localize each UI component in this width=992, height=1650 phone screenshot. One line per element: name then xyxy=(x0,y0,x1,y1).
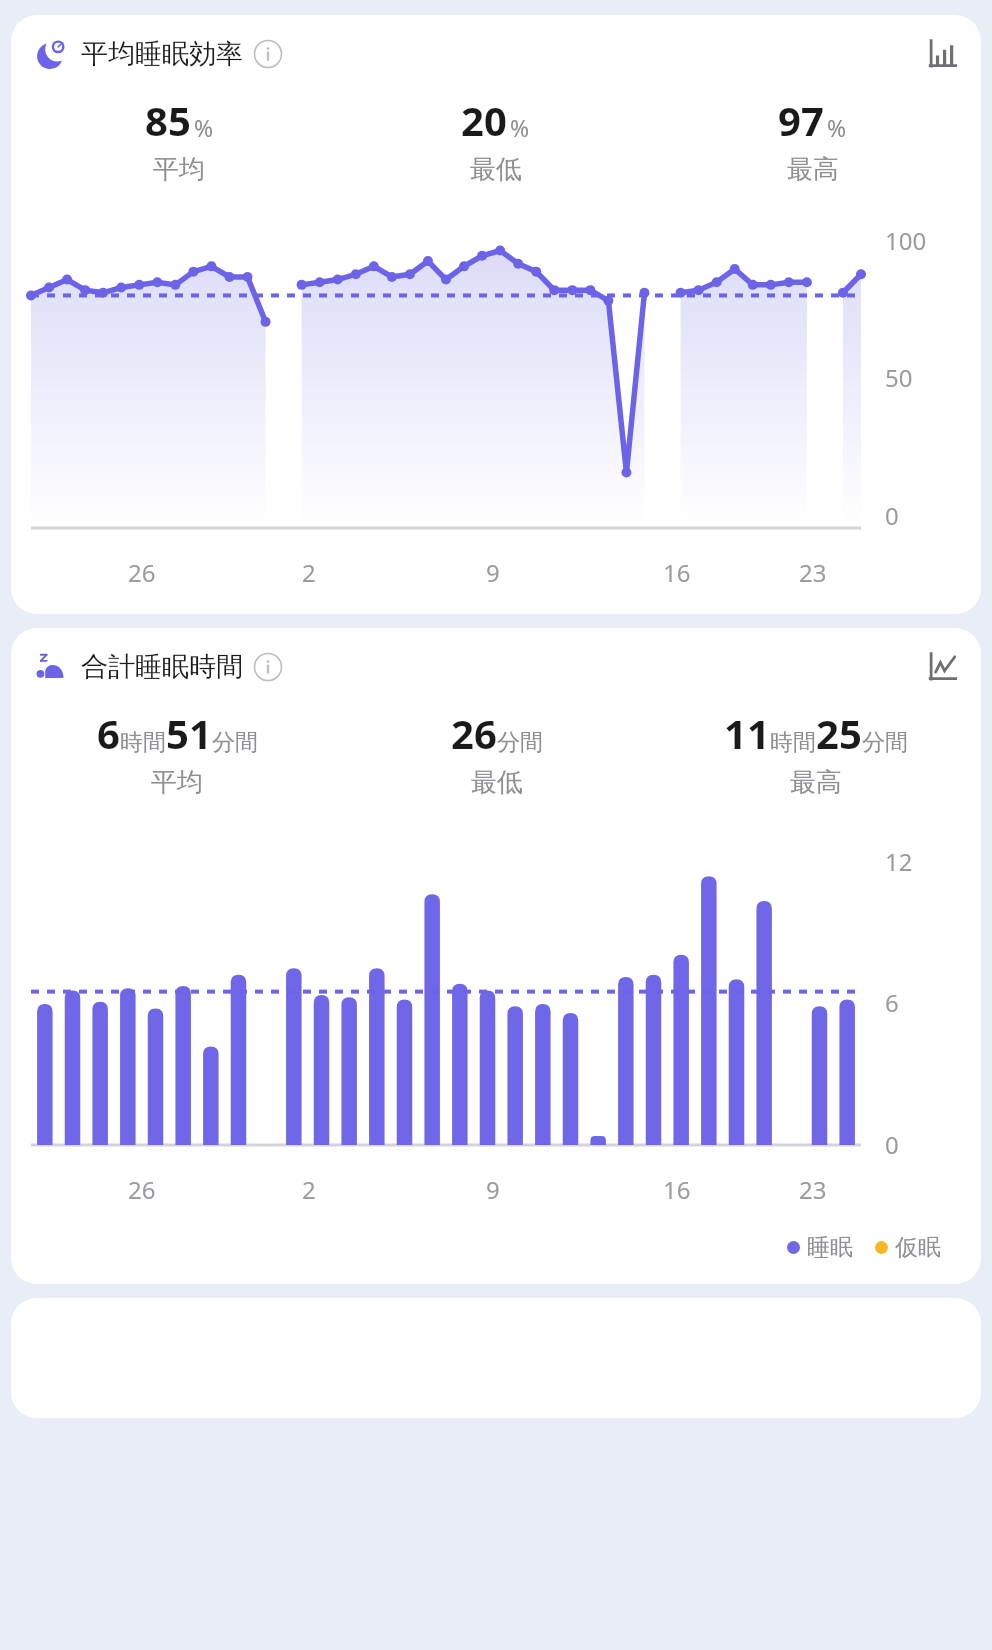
staticText: 時間 xyxy=(770,728,816,757)
staticText: 平均 xyxy=(153,153,205,186)
staticText: 分間 xyxy=(862,728,908,757)
button[interactable]: 睡眠 xyxy=(787,1233,853,1262)
button[interactable]: 情報 xyxy=(253,652,283,682)
button[interactable]: 折れ線グラフ表示 xyxy=(925,650,959,684)
staticText: 時間 xyxy=(120,728,166,757)
staticText: 平均 xyxy=(151,766,203,799)
staticText: 26 xyxy=(128,556,156,589)
staticText: 0 xyxy=(885,1128,899,1161)
staticText: 20 xyxy=(461,93,507,147)
button[interactable]: 棒グラフ表示 xyxy=(925,37,959,71)
staticText: 9 xyxy=(486,556,500,589)
staticText: 最高 xyxy=(787,153,839,186)
staticText: 51 xyxy=(166,706,212,760)
button[interactable]: 情報 xyxy=(253,39,283,69)
button[interactable]: 仮眠 xyxy=(875,1233,941,1262)
staticText: 睡眠 xyxy=(807,1233,853,1262)
staticText: 0 xyxy=(885,499,899,532)
staticText: 26 xyxy=(128,1173,156,1206)
staticText: 23 xyxy=(799,556,827,589)
staticText: 97 xyxy=(778,93,824,147)
staticText: % xyxy=(194,112,214,143)
staticText: 11 xyxy=(724,706,770,760)
staticText: 12 xyxy=(885,845,913,878)
staticText: 合計睡眠時間 xyxy=(81,650,243,684)
staticText: 2 xyxy=(302,556,316,589)
button[interactable]: 合計睡眠時間 xyxy=(11,628,981,1284)
staticText: 16 xyxy=(663,1173,691,1206)
staticText: 9 xyxy=(486,1173,500,1206)
staticText: 6 xyxy=(97,706,120,760)
staticText: 仮眠 xyxy=(895,1233,941,1262)
staticText: 50 xyxy=(885,361,913,394)
staticText: 100 xyxy=(885,224,927,257)
staticText: 分間 xyxy=(497,728,543,757)
staticText: 2 xyxy=(302,1173,316,1206)
staticText: 26 xyxy=(451,706,497,760)
staticText: 6 xyxy=(885,986,899,1019)
staticText: 最高 xyxy=(790,766,842,799)
staticText: 分間 xyxy=(212,728,258,757)
staticText: % xyxy=(510,112,530,143)
staticText: 平均睡眠効率 xyxy=(81,37,243,71)
staticText: 最低 xyxy=(470,153,522,186)
button[interactable]: 平均睡眠効率 xyxy=(11,15,981,614)
staticText: 23 xyxy=(799,1173,827,1206)
staticText: 85 xyxy=(145,93,191,147)
staticText: % xyxy=(827,112,847,143)
staticText: 最低 xyxy=(471,766,523,799)
staticText: 25 xyxy=(816,706,862,760)
staticText: 16 xyxy=(663,556,691,589)
